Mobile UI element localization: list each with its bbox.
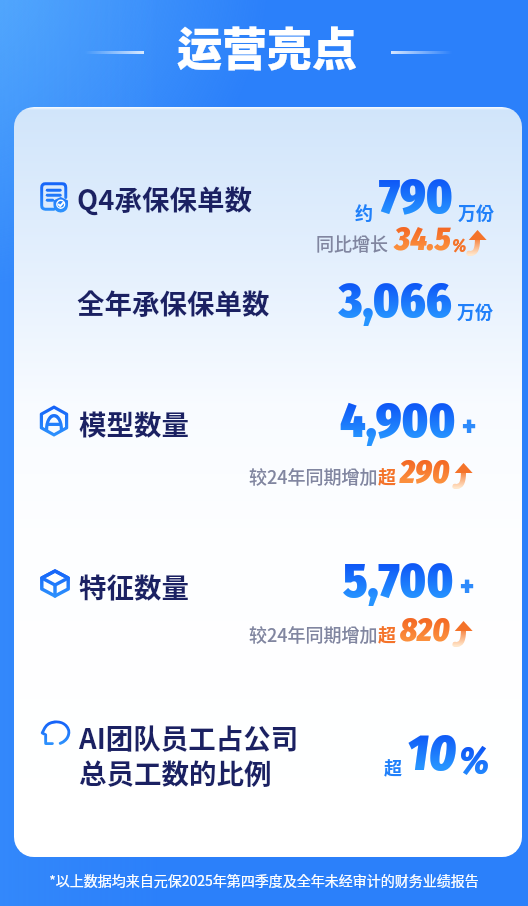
button[interactable]: 模型数量 [79,403,189,443]
button[interactable]: 较24年同期增加 [249,453,473,491]
button[interactable]: Q4承保保单数 [77,178,252,218]
button[interactable]: 4,900 [340,392,477,450]
staticText: 全年承保保单数 [77,282,270,322]
staticText: 34.5 [395,220,451,258]
button[interactable]: 约 [355,168,494,226]
staticText: + [462,410,477,444]
staticText: 较24年同期增加 [249,621,378,647]
staticText: 约 [355,199,373,225]
staticText: 3,066 [339,272,452,330]
staticText: 运营亮点 [177,14,358,79]
staticText: 超 [378,621,396,647]
staticText: 820 [400,611,450,649]
staticText: 同比增长 [316,230,388,256]
staticText: % [459,737,490,783]
staticText: 790 [379,168,453,226]
staticText: 超 [378,463,396,489]
button[interactable]: 较24年同期增加 [249,611,473,649]
staticText: Q4承保保单数 [77,178,252,218]
button[interactable]: 同比增长 [316,220,487,258]
staticText: 万份 [458,199,494,225]
staticText: 4,900 [340,392,456,450]
staticText: 5,700 [343,552,454,610]
button[interactable]: 超 [384,723,490,783]
staticText: 290 [400,453,450,491]
button[interactable]: 运营亮点 [177,14,358,79]
staticText: 万份 [457,298,493,324]
staticText: AI团队员工占公司 总员工数的比例 [79,717,299,792]
staticText: % [452,235,467,257]
staticText: + [460,570,475,604]
button[interactable]: 全年承保保单数 [77,282,270,322]
staticText: 模型数量 [79,403,189,443]
staticText: 较24年同期增加 [249,463,378,489]
staticText: 特征数量 [79,566,189,606]
button[interactable]: 特征数量 [79,566,189,606]
staticText: *以上数据均来自元保2025年第四季度及全年未经审计的财务业绩报告 [49,870,479,890]
button[interactable]: AI团队员工占公司 总员工数的比例 [79,717,299,792]
staticText: 超 [384,754,402,780]
staticText: 10 [407,723,457,783]
button[interactable]: 5,700 [343,552,475,610]
button[interactable]: 3,066 [339,272,493,330]
